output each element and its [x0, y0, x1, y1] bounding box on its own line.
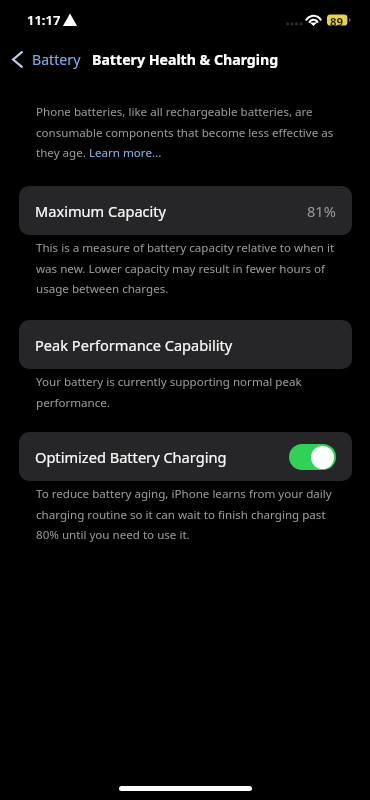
staticText: Maximum Capacity: [35, 201, 167, 221]
button[interactable]: Maximum Capacity: [19, 186, 352, 235]
staticText: Peak Performance Capability: [35, 335, 233, 355]
staticText: This is a measure of battery capacity re…: [36, 240, 349, 296]
staticText: Battery Health & Charging: [92, 50, 279, 69]
staticText: To reduce battery aging, iPhone learns f…: [36, 486, 349, 542]
staticText: Phone batteries, like all rechargeable b…: [36, 104, 349, 160]
button[interactable]: Optimized Battery Charging, on: [289, 444, 336, 470]
button[interactable]: Battery: [0, 50, 85, 69]
staticText: Your battery is currently supporting nor…: [36, 374, 349, 410]
button[interactable]: Peak Performance Capability: [19, 320, 352, 369]
staticText: 81%: [307, 201, 336, 221]
button[interactable]: Optimized Battery Charging: [19, 432, 352, 481]
staticText: 11:17: [27, 11, 61, 29]
staticText: 89: [330, 14, 344, 26]
staticText: Optimized Battery Charging: [35, 447, 227, 467]
staticText: Battery: [32, 50, 81, 69]
